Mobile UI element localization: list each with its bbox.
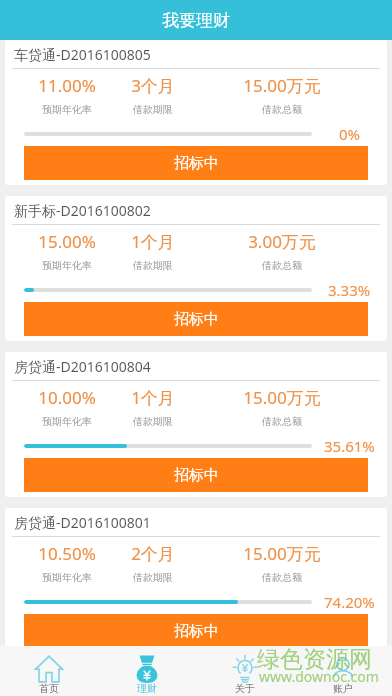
staticText: 借款期限 (133, 103, 173, 116)
staticText: 借款期限 (133, 571, 173, 584)
button[interactable]: 房贷通-D2016100801 (5, 508, 387, 653)
button[interactable]: 首页 (0, 646, 98, 696)
staticText: www.downoc.com (259, 667, 379, 686)
button[interactable]: 车贷通-D2016100805 (5, 40, 387, 185)
staticText: 招标中 (174, 622, 219, 641)
staticText: 15.00% (38, 230, 96, 253)
staticText: 借款期限 (133, 259, 173, 272)
button[interactable]: 招标中 (24, 614, 368, 648)
staticText: 房贷通-D2016100804 (14, 357, 151, 376)
staticText: 借款总额 (262, 571, 302, 584)
staticText: 15.00万元 (243, 386, 321, 409)
button[interactable]: 理财 (98, 646, 196, 696)
other: 关于 (231, 655, 259, 683)
staticText: 10.50% (38, 542, 96, 565)
staticText: 10.00% (38, 386, 96, 409)
staticText: 车贷通-D2016100805 (14, 45, 151, 64)
staticText: 借款总额 (262, 415, 302, 428)
staticText: 关于 (235, 682, 255, 695)
staticText: 3个月 (131, 74, 175, 97)
button[interactable]: 新手标-D2016100802 (5, 196, 387, 341)
staticText: 15.00万元 (243, 74, 321, 97)
staticText: 招标中 (174, 466, 219, 485)
staticText: 2个月 (131, 542, 175, 565)
staticText: 房贷通-D2016100801 (14, 513, 151, 532)
other: 账户 (329, 655, 357, 683)
button[interactable]: 招标中 (24, 302, 368, 336)
staticText: 招标中 (174, 154, 219, 173)
other: 首页 (35, 655, 63, 683)
button[interactable]: 关于 (196, 646, 294, 696)
staticText: 1个月 (131, 230, 175, 253)
staticText: 绿色资源网 (257, 645, 372, 674)
other: 理财 (133, 655, 161, 683)
staticText: 账户 (333, 682, 353, 695)
staticText: 0% (339, 124, 361, 144)
staticText: 借款总额 (262, 259, 302, 272)
staticText: 35.61% (324, 436, 375, 456)
button[interactable]: 招标中 (24, 146, 368, 180)
button[interactable]: 招标中 (24, 458, 368, 492)
staticText: 我要理财 (162, 10, 230, 31)
staticText: 借款总额 (262, 103, 302, 116)
staticText: 3.33% (328, 280, 371, 300)
staticText: 预期年化率 (42, 415, 92, 428)
button[interactable]: 房贷通-D2016100804 (5, 352, 387, 497)
staticText: 首页 (39, 682, 59, 695)
staticText: 借款期限 (133, 415, 173, 428)
staticText: 74.20% (324, 592, 375, 612)
staticText: 预期年化率 (42, 103, 92, 116)
staticText: 1个月 (131, 386, 175, 409)
staticText: 预期年化率 (42, 259, 92, 272)
staticText: 预期年化率 (42, 571, 92, 584)
button[interactable]: 账户 (294, 646, 392, 696)
staticText: 3.00万元 (248, 230, 316, 253)
staticText: 15.00万元 (243, 542, 321, 565)
staticText: 11.00% (38, 74, 96, 97)
staticText: 新手标-D2016100802 (14, 201, 151, 220)
staticText: 招标中 (174, 310, 219, 329)
staticText: 理财 (137, 682, 157, 695)
